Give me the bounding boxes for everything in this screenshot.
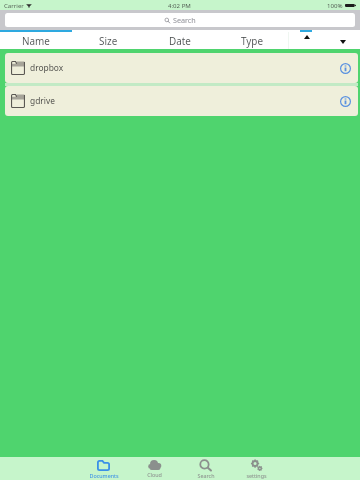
button[interactable]: Documents — [78, 457, 129, 480]
button[interactable]: Search — [5, 13, 355, 27]
staticText: Carrier — [4, 1, 24, 9]
staticText: 100% — [327, 1, 343, 9]
button[interactable]: Name — [0, 32, 72, 49]
button[interactable]: Date — [144, 32, 216, 49]
button[interactable]: Cloud — [129, 457, 180, 480]
button[interactable]: settings — [231, 457, 282, 480]
staticText: 4:02 PM — [168, 1, 191, 9]
staticText: Date — [169, 34, 191, 47]
button[interactable]: Sort ascending — [289, 32, 325, 49]
button[interactable]: Search — [180, 457, 231, 480]
staticText: dropbox — [30, 62, 64, 73]
button[interactable]: Type — [216, 32, 288, 49]
staticText: Size — [99, 34, 118, 47]
staticText: Documents — [89, 472, 119, 479]
staticText: gdrive — [30, 95, 55, 106]
staticText: Search — [197, 472, 215, 479]
button[interactable]: Info — [338, 94, 352, 108]
staticText: Type — [241, 34, 264, 47]
staticText: Name — [22, 34, 50, 47]
staticText: Cloud — [147, 471, 162, 478]
staticText: Search — [173, 15, 196, 25]
staticText: settings — [246, 472, 267, 479]
button[interactable]: Info — [338, 61, 352, 75]
button[interactable]: Sort descending — [325, 32, 360, 49]
button[interactable]: dropbox — [5, 53, 358, 83]
button[interactable]: Size — [72, 32, 144, 49]
button[interactable]: gdrive — [5, 86, 358, 116]
